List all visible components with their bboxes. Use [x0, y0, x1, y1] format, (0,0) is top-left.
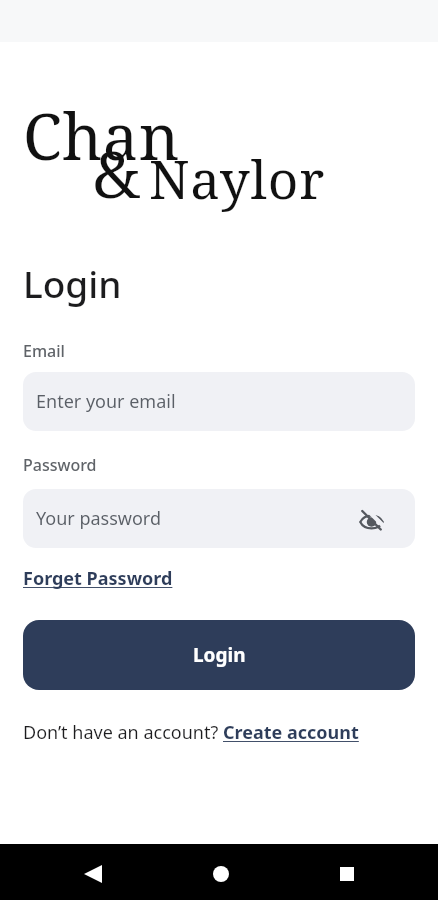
- staticText: &: [93, 130, 141, 217]
- staticText: Chan: [23, 93, 180, 179]
- button[interactable]: [84, 865, 102, 883]
- button[interactable]: Your password: [23, 489, 415, 548]
- staticText: Password: [23, 454, 97, 476]
- staticText: Login: [193, 642, 246, 668]
- staticText: Login: [23, 258, 122, 308]
- staticText: Don’t have an account?: [23, 720, 223, 745]
- staticText: Your password: [36, 506, 162, 531]
- button[interactable]: Enter your email: [23, 372, 415, 431]
- staticText: Enter your email: [36, 389, 176, 414]
- button[interactable]: Login: [23, 620, 415, 690]
- button[interactable]: Forget Password: [23, 566, 173, 591]
- button[interactable]: [213, 866, 229, 882]
- staticText: Naylor: [149, 142, 325, 214]
- staticText: Email: [23, 340, 65, 362]
- button[interactable]: Create account: [223, 720, 359, 745]
